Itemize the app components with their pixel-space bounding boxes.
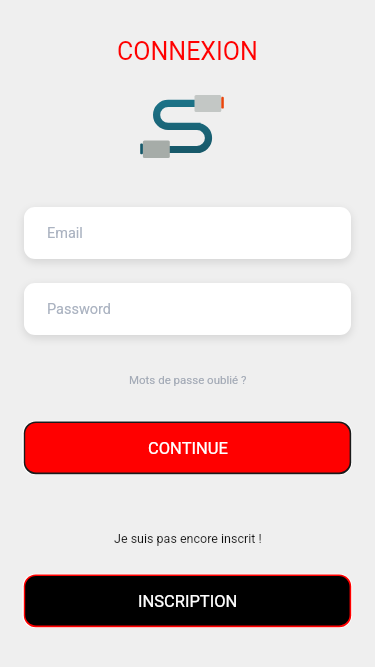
- button[interactable]: Email: [24, 207, 351, 259]
- staticText: Email: [47, 225, 83, 242]
- staticText: Je suis pas encore inscrit !: [114, 531, 262, 546]
- button[interactable]: Je suis pas encore inscrit !: [114, 531, 262, 546]
- button[interactable]: CONTINUE: [26, 423, 350, 473]
- staticText: CONTINUE: [148, 439, 228, 458]
- other: App logo: [138, 92, 228, 164]
- staticText: CONNEXION: [117, 37, 258, 66]
- button[interactable]: Password: [24, 283, 351, 335]
- staticText: INSCRIPTION: [138, 592, 238, 611]
- button[interactable]: INSCRIPTION: [26, 576, 350, 626]
- staticText: Password: [47, 301, 112, 318]
- staticText: Mots de passe oublié ?: [129, 373, 247, 386]
- button[interactable]: Mots de passe oublié ?: [129, 373, 247, 386]
